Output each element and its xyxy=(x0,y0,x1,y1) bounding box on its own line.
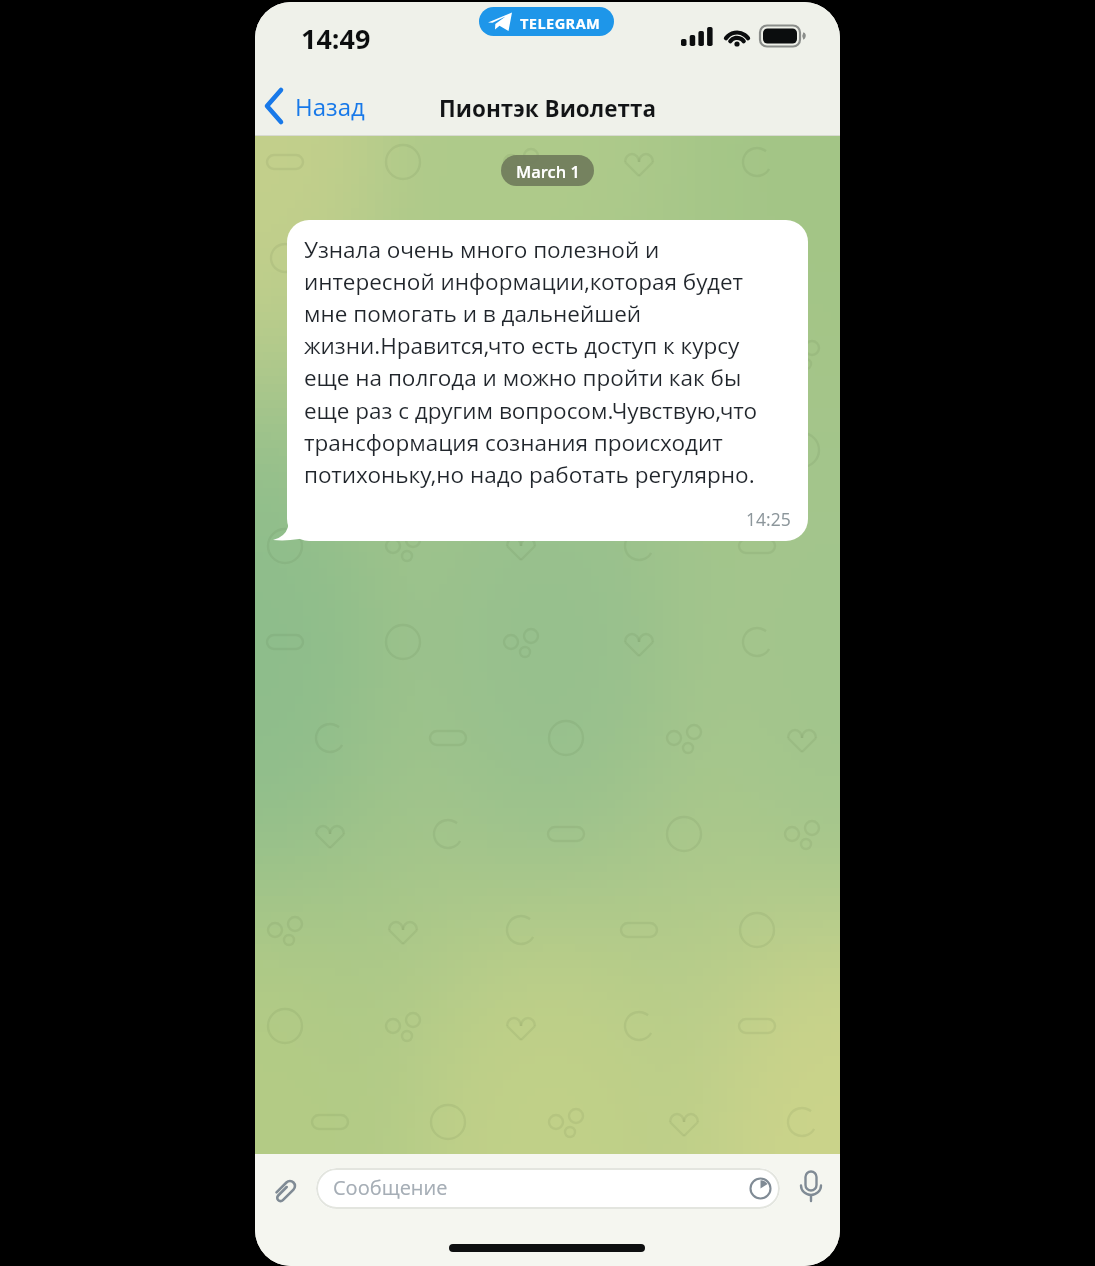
button[interactable]: Узнала очень много полезной и xyxy=(287,220,808,541)
staticText: TELEGRAM xyxy=(520,13,601,33)
staticText: еще раз с другим вопросом.Чувствую,что xyxy=(304,395,758,426)
button[interactable]: Назад xyxy=(263,88,393,128)
staticText: потихоньку,но надо работать регулярно. xyxy=(304,459,755,490)
button[interactable]: TELEGRAM xyxy=(479,7,614,36)
button[interactable]: Сообщение xyxy=(316,1168,780,1209)
staticText: March 1 xyxy=(516,160,580,182)
staticText: мне помогать и в дальнейшей xyxy=(304,298,642,329)
button[interactable] xyxy=(271,1176,299,1206)
staticText: Узнала очень много полезной и xyxy=(304,234,660,265)
staticText: 14:25 xyxy=(746,507,791,531)
staticText: Сообщение xyxy=(333,1174,448,1201)
staticText: 14:49 xyxy=(301,20,371,57)
staticText: жизни.Нравится,что есть доступ к курсу xyxy=(304,330,740,361)
staticText: Назад xyxy=(295,90,365,123)
button[interactable]: March 1 xyxy=(501,155,594,186)
staticText: Пионтэк Виолетта xyxy=(439,93,657,124)
staticText: трансформация сознания происходит xyxy=(304,427,723,458)
button[interactable] xyxy=(796,1170,826,1208)
staticText: еще на полгода и можно пройти как бы xyxy=(304,362,742,393)
staticText: интересной информации,которая будет xyxy=(304,266,744,297)
